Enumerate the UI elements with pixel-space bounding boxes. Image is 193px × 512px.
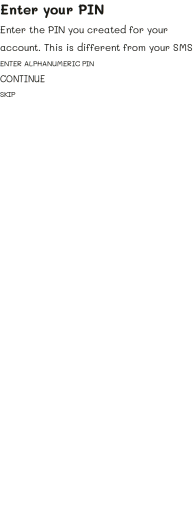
- staticText: CONTINUE: [0, 73, 45, 84]
- staticText: Enter your PIN: [0, 0, 104, 18]
- staticText: Enter the PIN you created for your: [0, 23, 168, 36]
- staticText: ENTER ALPHANUMERIC PIN: [0, 58, 94, 68]
- staticText: account. This is different from your SMS: [0, 41, 193, 53]
- staticText: SKIP: [0, 89, 15, 99]
